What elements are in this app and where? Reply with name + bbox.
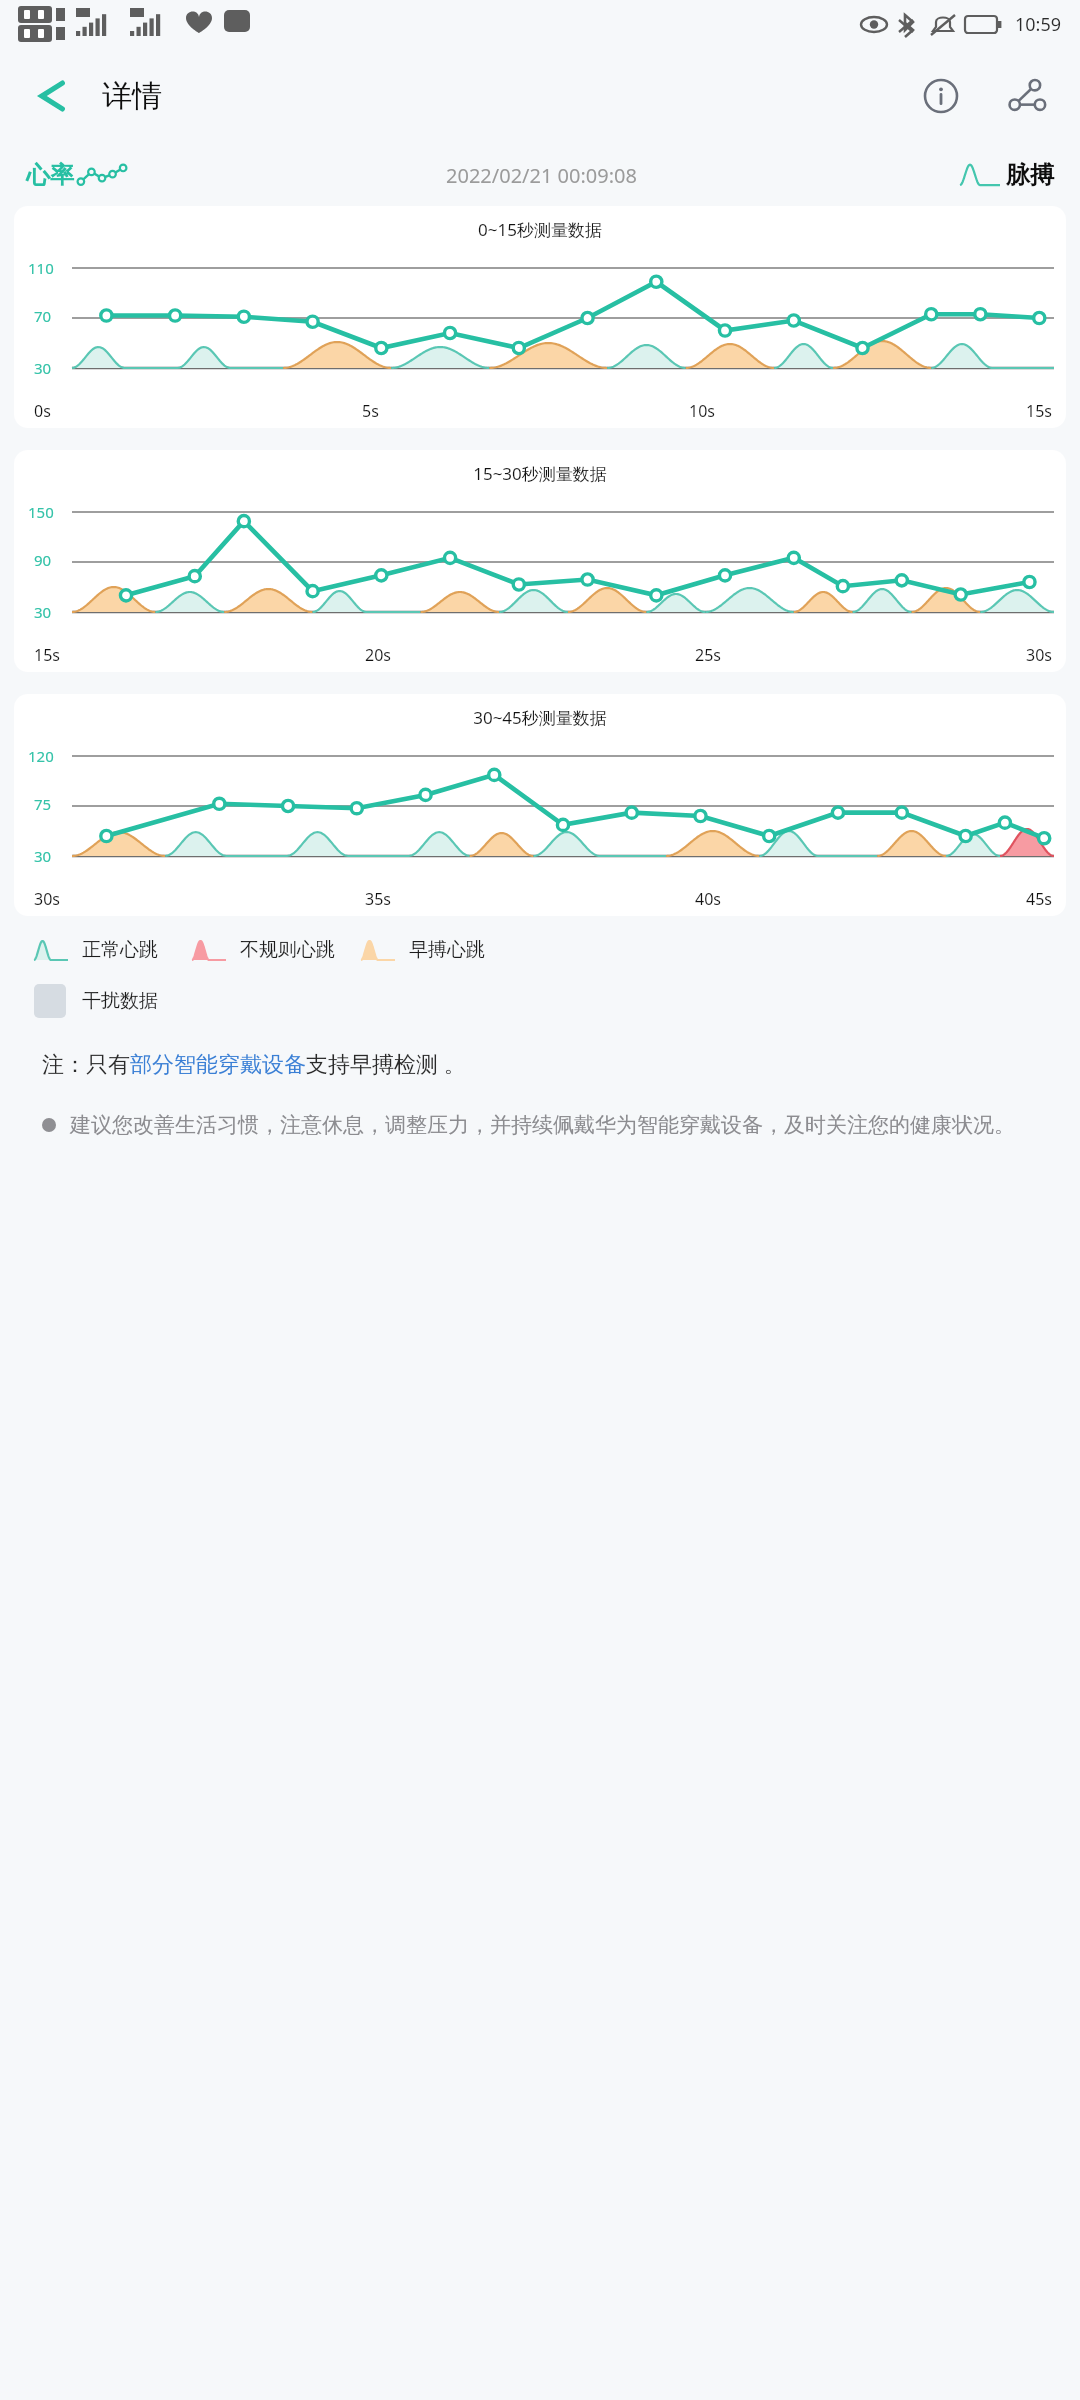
staticText: 0~15秒测量数据 — [14, 218, 1066, 241]
staticText: 0s — [34, 400, 51, 422]
staticText: 干扰数据 — [82, 989, 158, 1013]
staticText: 90 — [34, 550, 52, 570]
staticText: 20s — [365, 644, 391, 666]
staticText: 30s — [34, 888, 60, 910]
staticText: 70 — [34, 306, 52, 326]
button[interactable]: 正常心跳 — [34, 938, 158, 962]
button[interactable]: 早搏心跳 — [361, 938, 485, 962]
staticText: 2022/02/21 00:09:08 — [446, 162, 637, 189]
staticText: 正常心跳 — [82, 938, 158, 962]
staticText: 110 — [28, 258, 54, 278]
button[interactable]: 脉搏 — [960, 160, 1054, 190]
staticText: 早搏心跳 — [409, 938, 485, 962]
button[interactable]: 0~15秒测量数据 — [14, 206, 1066, 428]
staticText: 10s — [689, 400, 715, 422]
staticText: 详情 — [102, 77, 162, 115]
staticText: 35s — [365, 888, 391, 910]
staticText: 45s — [1026, 888, 1052, 910]
button[interactable]: 30~45秒测量数据 — [14, 694, 1066, 916]
button[interactable]: 心率 — [26, 160, 124, 190]
button[interactable]: 15~30秒测量数据 — [14, 450, 1066, 672]
staticText: 5s — [362, 400, 379, 422]
staticText: 注：只有部分智能穿戴设备支持早搏检测 。 — [42, 1048, 1052, 1078]
button[interactable]: Share — [996, 65, 1058, 127]
staticText: 40s — [695, 888, 721, 910]
staticText: 不规则心跳 — [240, 938, 335, 962]
staticText: 30s — [1026, 644, 1052, 666]
staticText: 30~45秒测量数据 — [14, 706, 1066, 729]
staticText: 120 — [28, 746, 54, 766]
button[interactable]: Back — [22, 64, 86, 128]
staticText: 15s — [1026, 400, 1052, 422]
staticText: 脉搏 — [1006, 160, 1054, 190]
staticText: 15~30秒测量数据 — [14, 462, 1066, 485]
staticText: 建议您改善生活习惯，注意休息，调整压力，并持续佩戴华为智能穿戴设备，及时关注您的… — [70, 1112, 1015, 1138]
staticText: 15s — [34, 644, 60, 666]
staticText: 150 — [28, 502, 54, 522]
button[interactable]: Info — [910, 65, 972, 127]
staticText: 25s — [695, 644, 721, 666]
staticText: 30 — [34, 602, 52, 622]
button[interactable]: 不规则心跳 — [192, 938, 335, 962]
staticText: 75 — [34, 794, 52, 814]
staticText: 10:59 — [1015, 12, 1062, 37]
staticText: 30 — [34, 358, 52, 378]
staticText: 心率 — [26, 160, 74, 190]
staticText: 30 — [34, 846, 52, 866]
